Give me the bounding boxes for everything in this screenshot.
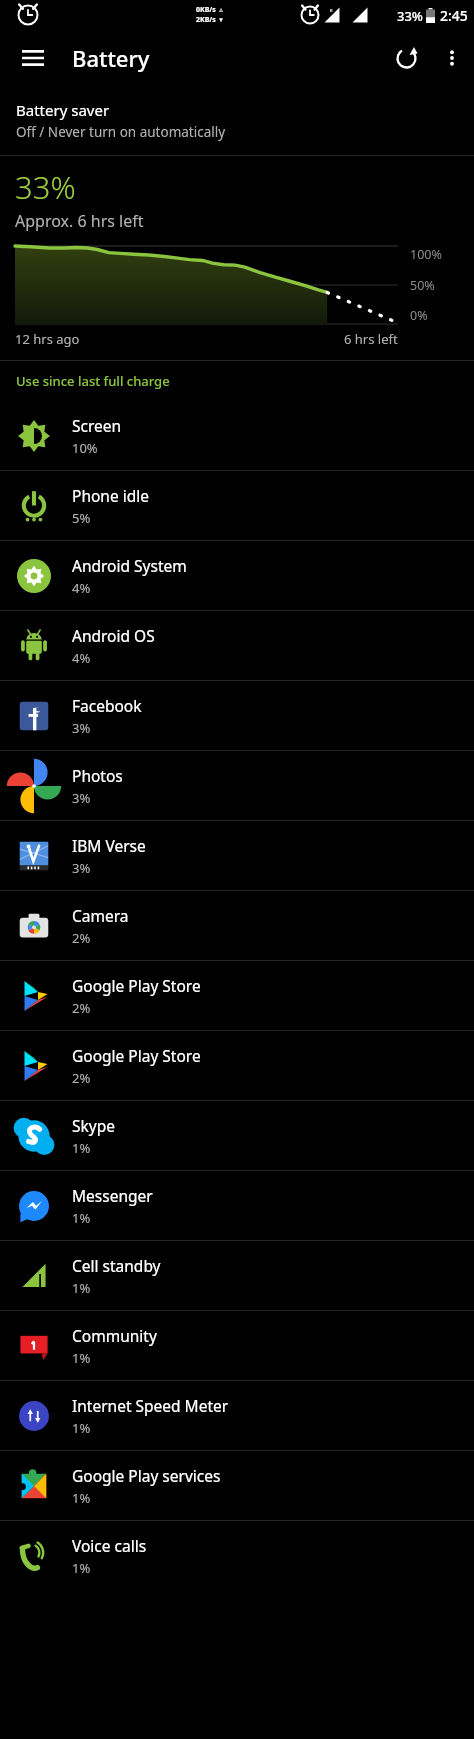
staticText: 1% xyxy=(72,1349,91,1367)
staticText: 0KB/s ▵ xyxy=(196,5,223,15)
staticText: Phone idle xyxy=(72,485,149,506)
staticText: 100% xyxy=(410,246,442,263)
staticText: 3% xyxy=(72,719,91,737)
button[interactable]: Google Play Store xyxy=(0,1031,474,1100)
staticText: 2% xyxy=(72,929,91,947)
staticText: ᴱ xyxy=(330,7,333,17)
staticText: Approx. 6 hrs left xyxy=(15,210,144,232)
button[interactable]: Google Play services xyxy=(0,1451,474,1520)
staticText: Skype xyxy=(72,1115,115,1136)
staticText: 2KB/s ▾ xyxy=(196,15,223,25)
button[interactable]: Photos xyxy=(0,751,474,820)
staticText: 1% xyxy=(72,1489,91,1507)
staticText: 6 hrs left xyxy=(344,330,398,348)
button[interactable]: Facebook xyxy=(0,681,474,750)
staticText: Google Play services xyxy=(72,1465,221,1486)
staticText: 4% xyxy=(72,579,91,597)
button[interactable]: Android System xyxy=(0,541,474,610)
staticText: 5% xyxy=(72,509,91,527)
button[interactable]: More options xyxy=(430,36,474,80)
staticText: Google Play Store xyxy=(72,975,201,996)
staticText: Battery saver xyxy=(16,100,110,120)
staticText: Google Play Store xyxy=(72,1045,201,1066)
button[interactable]: 33% xyxy=(0,156,474,360)
staticText: 2% xyxy=(72,1069,91,1087)
staticText: 0% xyxy=(410,307,428,324)
staticText: Off / Never turn on automatically xyxy=(16,123,226,141)
button[interactable]: IBM Verse xyxy=(0,821,474,890)
button[interactable]: Battery saver xyxy=(0,86,474,155)
button[interactable]: Open navigation menu xyxy=(10,35,56,81)
staticText: IBM Verse xyxy=(72,835,146,856)
staticText: 33% xyxy=(15,166,76,208)
staticText: 1% xyxy=(72,1279,91,1297)
button[interactable]: Messenger xyxy=(0,1171,474,1240)
staticText: 4% xyxy=(72,649,91,667)
staticText: Use since last full charge xyxy=(16,372,170,390)
staticText: Screen xyxy=(72,415,122,436)
staticText: 1% xyxy=(72,1209,91,1227)
button[interactable]: Screen xyxy=(0,401,474,470)
staticText: 3% xyxy=(72,859,91,877)
staticText: Internet Speed Meter xyxy=(72,1395,229,1416)
button[interactable]: Community xyxy=(0,1311,474,1380)
staticText: Voice calls xyxy=(72,1535,147,1556)
button[interactable]: Refresh xyxy=(382,34,430,82)
staticText: 1% xyxy=(72,1419,91,1437)
staticText: Camera xyxy=(72,905,129,926)
staticText: Android OS xyxy=(72,625,155,646)
staticText: 3% xyxy=(72,789,91,807)
staticText: Community xyxy=(72,1325,157,1346)
button[interactable]: Phone idle xyxy=(0,471,474,540)
staticText: Photos xyxy=(72,765,123,786)
staticText: 10% xyxy=(72,439,98,457)
button[interactable]: Cell standby xyxy=(0,1241,474,1310)
button[interactable]: Android OS xyxy=(0,611,474,680)
staticText: 50% xyxy=(410,277,435,294)
staticText: 2:45 xyxy=(440,6,468,25)
button[interactable]: Skype xyxy=(0,1101,474,1170)
button[interactable]: Voice calls xyxy=(0,1521,474,1590)
staticText: Android System xyxy=(72,555,187,576)
staticText: Battery xyxy=(72,43,150,73)
staticText: 2% xyxy=(72,999,91,1017)
button[interactable]: Camera xyxy=(0,891,474,960)
staticText: 33% xyxy=(397,7,423,25)
staticText: Facebook xyxy=(72,695,142,716)
staticText: 1% xyxy=(72,1139,91,1157)
staticText: 1% xyxy=(72,1559,91,1577)
staticText: Cell standby xyxy=(72,1255,161,1276)
button[interactable]: Internet Speed Meter xyxy=(0,1381,474,1450)
staticText: 12 hrs ago xyxy=(15,330,80,348)
button[interactable]: Google Play Store xyxy=(0,961,474,1030)
staticText: Messenger xyxy=(72,1185,153,1206)
